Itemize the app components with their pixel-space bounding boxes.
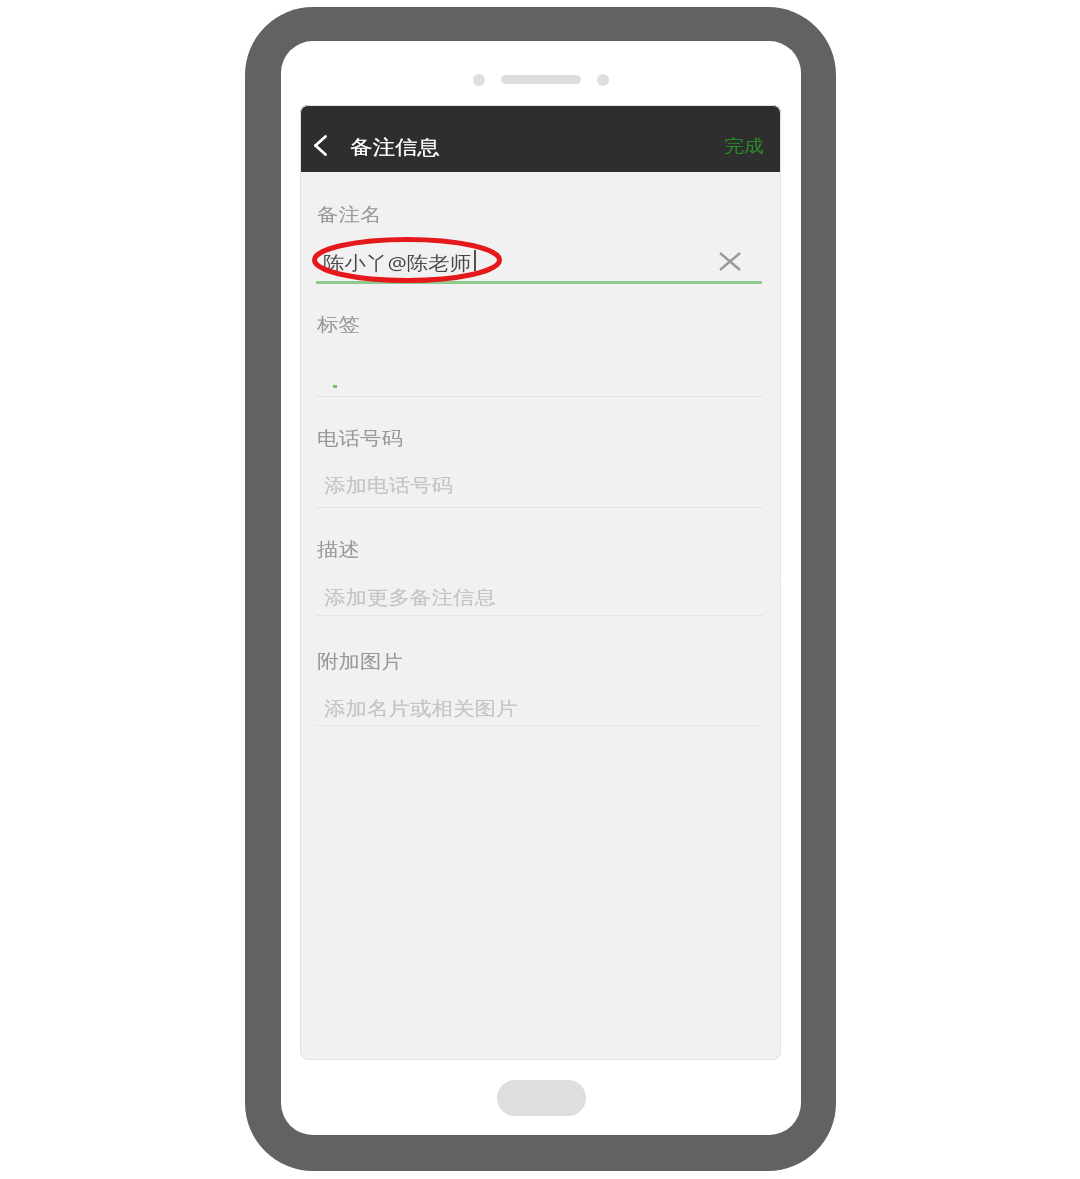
button[interactable] — [300, 396, 779, 507]
staticText: 电话号码 — [317, 427, 403, 451]
staticText: 备注名 — [317, 203, 382, 227]
button[interactable]: 完成 — [705, 111, 781, 172]
staticText: 附加图片 — [317, 650, 403, 674]
button[interactable] — [300, 180, 779, 285]
button[interactable] — [300, 293, 779, 396]
staticText: 添加电话号码 — [324, 474, 453, 498]
button[interactable]: Clear text — [710, 241, 750, 281]
button[interactable]: Home — [497, 1080, 586, 1116]
staticText: 添加更多备注信息 — [324, 586, 496, 610]
staticText: 完成 — [724, 135, 764, 157]
staticText: 备注信息 — [350, 135, 440, 160]
button[interactable] — [300, 507, 779, 615]
staticText: 陈小丫@陈老师 — [323, 250, 472, 275]
staticText: 描述 — [317, 538, 360, 562]
button[interactable]: Back — [300, 111, 345, 172]
staticText: 添加名片或相关图片 — [324, 697, 518, 721]
staticText: 标签 — [317, 313, 360, 337]
button[interactable] — [300, 615, 779, 725]
